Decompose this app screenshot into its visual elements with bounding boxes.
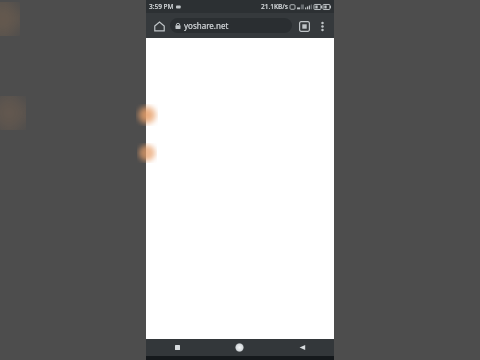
staticText: yoshare.net <box>184 20 229 31</box>
button[interactable]: Switch tabs <box>295 17 313 35</box>
staticText: 3:59 PM <box>149 2 174 11</box>
staticText: 21.1KB/s <box>261 2 288 11</box>
button[interactable]: More options <box>314 18 330 34</box>
button[interactable]: yoshare.net <box>170 18 292 33</box>
button[interactable]: Home <box>208 339 271 356</box>
button[interactable]: Back <box>271 339 334 356</box>
button[interactable]: Home <box>150 17 168 35</box>
button[interactable]: Recent apps <box>146 339 208 356</box>
